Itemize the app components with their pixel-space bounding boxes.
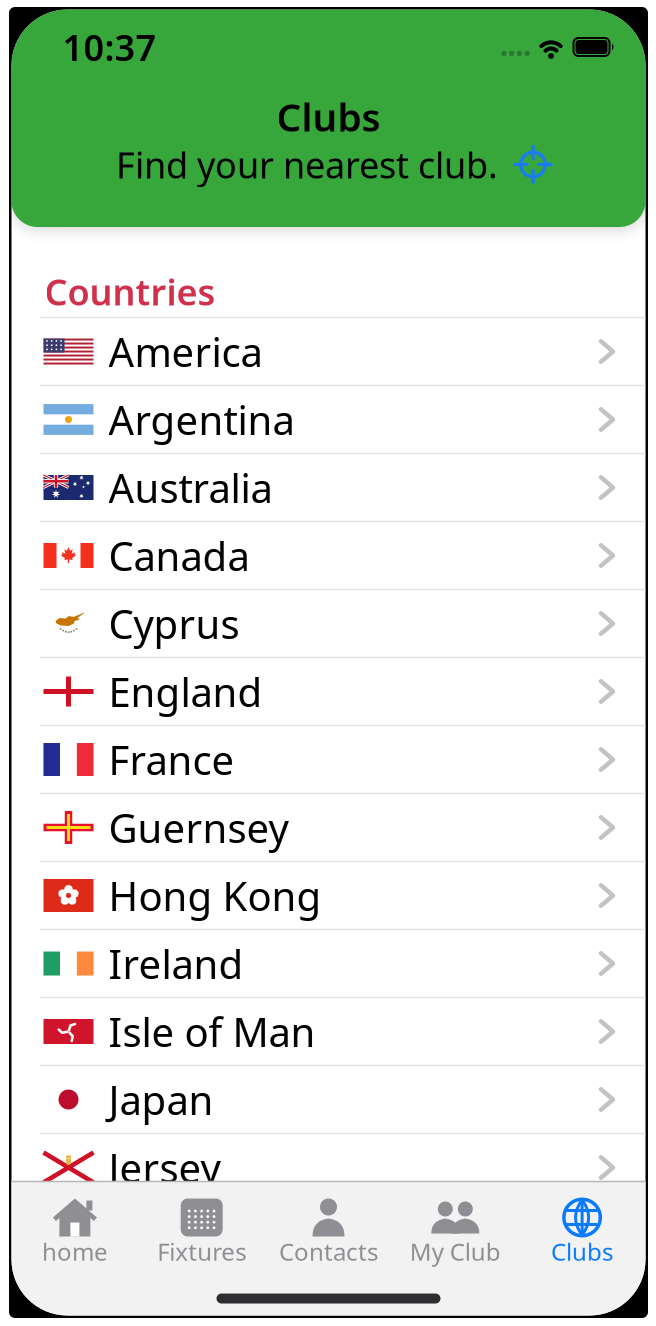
staticText: Contacts — [279, 1236, 378, 1267]
staticText: Countries — [44, 268, 215, 315]
staticText: Australia — [108, 461, 272, 514]
button[interactable]: Cyprus — [11, 589, 645, 657]
button[interactable]: Japan — [11, 1065, 645, 1133]
button[interactable]: My Club — [392, 1181, 518, 1277]
button[interactable]: Guernsey — [11, 793, 645, 861]
staticText: Japan — [108, 1073, 213, 1126]
button[interactable]: Australia — [11, 453, 645, 521]
staticText: Find your nearest club. — [116, 141, 498, 188]
button[interactable]: America — [11, 317, 645, 385]
button[interactable]: Clubs — [519, 1181, 645, 1277]
button[interactable]: Canada — [11, 521, 645, 589]
staticText: Guernsey — [108, 801, 288, 854]
staticText: Jersey — [108, 1141, 220, 1194]
staticText: France — [108, 733, 234, 786]
staticText: Clubs — [551, 1236, 613, 1267]
button[interactable]: Contacts — [265, 1181, 391, 1277]
staticText: home — [42, 1236, 108, 1267]
staticText: My Club — [410, 1236, 501, 1267]
button[interactable]: France — [11, 725, 645, 793]
staticText: Canada — [108, 529, 249, 582]
button[interactable]: Isle of Man — [11, 997, 645, 1065]
staticText: Isle of Man — [108, 1005, 315, 1058]
staticText: Cyprus — [108, 597, 239, 650]
staticText: England — [108, 665, 262, 718]
staticText: 10:37 — [62, 23, 156, 71]
button[interactable]: Find nearest club — [513, 144, 553, 184]
button[interactable]: Fixtures — [139, 1181, 265, 1277]
staticText: America — [108, 325, 262, 378]
staticText: Clubs — [276, 91, 380, 142]
staticText: Ireland — [108, 937, 243, 990]
button[interactable]: England — [11, 657, 645, 725]
button[interactable]: Ireland — [11, 929, 645, 997]
staticText: Argentina — [108, 393, 294, 446]
button[interactable]: home — [12, 1181, 138, 1277]
staticText: Hong Kong — [108, 869, 321, 922]
button[interactable]: Argentina — [11, 385, 645, 453]
staticText: Fixtures — [157, 1236, 246, 1267]
button[interactable]: Jersey — [11, 1133, 645, 1201]
button[interactable]: Hong Kong — [11, 861, 645, 929]
